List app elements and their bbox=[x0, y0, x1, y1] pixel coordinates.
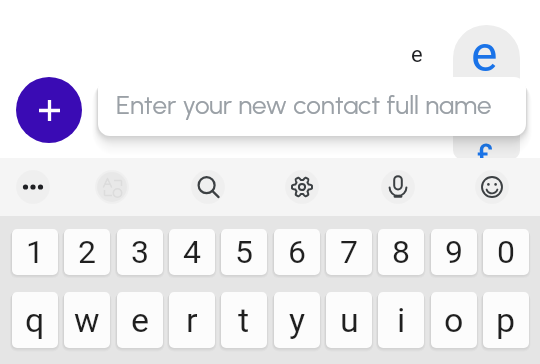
button[interactable]: 1 bbox=[12, 229, 58, 275]
staticText: q bbox=[25, 300, 45, 340]
staticText: p bbox=[496, 300, 516, 340]
staticText: 8 bbox=[392, 233, 410, 271]
staticText: 5 bbox=[235, 233, 253, 271]
button[interactable]: 9 bbox=[431, 229, 477, 275]
staticText: 6 bbox=[288, 233, 306, 271]
button[interactable]: 7 bbox=[326, 229, 372, 275]
staticText: e bbox=[411, 42, 423, 68]
staticText: 0 bbox=[497, 233, 515, 271]
staticText: 3 bbox=[131, 233, 149, 271]
staticText: t bbox=[238, 300, 250, 340]
staticText: Enter your new contact full name bbox=[116, 89, 492, 120]
staticText: w bbox=[74, 300, 100, 340]
button[interactable]: 2 bbox=[64, 229, 110, 275]
button[interactable]: 4 bbox=[169, 229, 215, 275]
staticText: e bbox=[131, 300, 150, 340]
staticText: i bbox=[397, 300, 406, 340]
staticText: u bbox=[340, 300, 359, 340]
button[interactable]: 8 bbox=[378, 229, 424, 275]
button[interactable]: 5 bbox=[221, 229, 267, 275]
button[interactable]: 3 bbox=[117, 229, 163, 275]
staticText: o bbox=[444, 300, 464, 340]
button[interactable]: Settings bbox=[280, 165, 324, 209]
button[interactable]: o bbox=[431, 292, 477, 348]
button[interactable]: Enter your new contact full name bbox=[98, 77, 526, 136]
staticText: 2 bbox=[78, 233, 96, 271]
staticText: 7 bbox=[340, 233, 358, 271]
button[interactable]: y bbox=[274, 292, 320, 348]
staticText: r bbox=[186, 300, 198, 340]
button[interactable]: Emoji bbox=[470, 165, 514, 209]
staticText: y bbox=[289, 300, 306, 340]
button[interactable]: t bbox=[221, 292, 267, 348]
button[interactable]: r bbox=[169, 292, 215, 348]
button[interactable]: More options bbox=[11, 165, 55, 209]
staticText: 9 bbox=[445, 233, 463, 271]
button[interactable]: Translate bbox=[90, 165, 134, 209]
button[interactable]: Voice input bbox=[376, 165, 420, 209]
button[interactable]: i bbox=[378, 292, 424, 348]
button[interactable]: w bbox=[64, 292, 110, 348]
button[interactable]: u bbox=[326, 292, 372, 348]
button[interactable]: 0 bbox=[483, 229, 529, 275]
staticText: e bbox=[471, 25, 498, 84]
staticText: 4 bbox=[183, 233, 201, 271]
button[interactable]: p bbox=[483, 292, 529, 348]
button[interactable]: 6 bbox=[274, 229, 320, 275]
staticText: £ bbox=[477, 139, 493, 160]
button[interactable]: e bbox=[117, 292, 163, 348]
button[interactable]: q bbox=[12, 292, 58, 348]
staticText: 1 bbox=[26, 233, 44, 271]
button[interactable]: Add new contact bbox=[16, 77, 82, 143]
button[interactable]: Search bbox=[186, 165, 230, 209]
